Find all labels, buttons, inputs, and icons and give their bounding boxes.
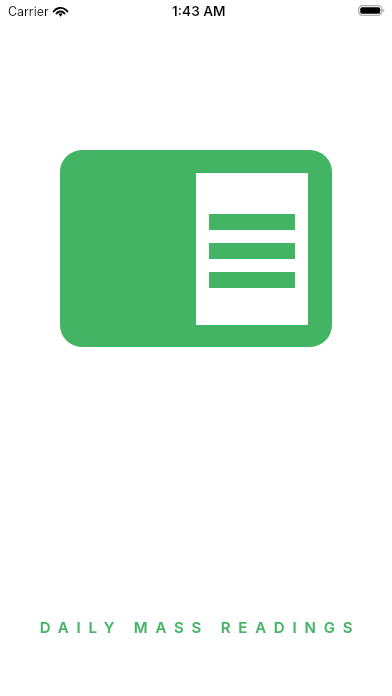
other: Wi-Fi signal [53,4,68,15]
staticText: Carrier [8,4,49,19]
button[interactable]: Daily Mass Readings logo [60,150,332,347]
other: Battery full [358,5,385,16]
staticText: 1:43 AM [172,3,226,19]
button[interactable]: DAILY MASS READINGS [8,618,392,636]
